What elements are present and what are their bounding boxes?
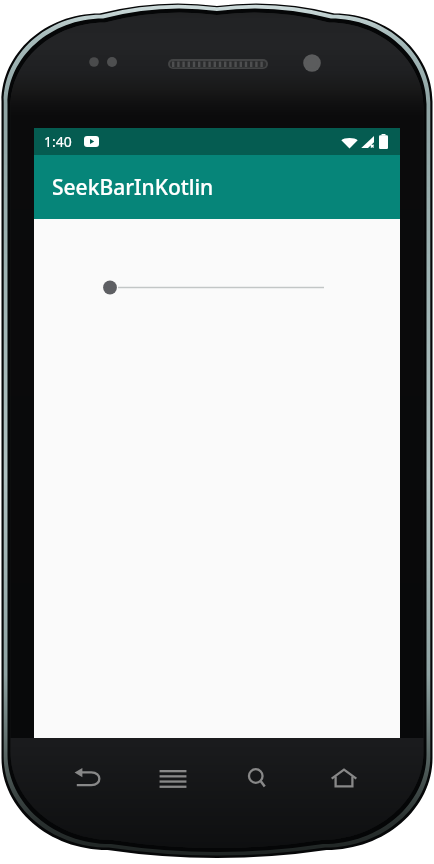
button[interactable]: Home	[301, 752, 387, 804]
button[interactable]: Back	[45, 752, 130, 804]
staticText: SeekBarInKotlin	[52, 173, 214, 202]
button[interactable]: Menu	[130, 752, 215, 804]
staticText: 1:40	[44, 132, 72, 151]
button[interactable]: SeekBarInKotlin	[34, 155, 400, 219]
button[interactable]: Seek bar	[34, 262, 400, 310]
button[interactable]: Search	[215, 752, 301, 804]
